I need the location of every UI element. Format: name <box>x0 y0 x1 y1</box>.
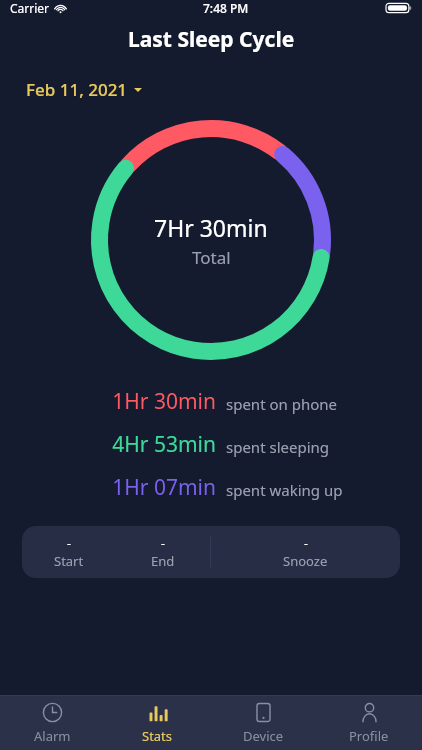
staticText: 7Hr 30min <box>154 212 268 243</box>
staticText: 7:48 PM <box>203 0 249 16</box>
staticText: Device <box>243 727 284 745</box>
button[interactable]: Device <box>210 696 316 750</box>
staticText: - <box>161 535 165 551</box>
staticText: 4Hr 53min <box>112 430 216 459</box>
staticText: - <box>304 535 308 551</box>
staticText: Start <box>54 552 84 570</box>
staticText: spent on phone <box>226 394 338 414</box>
staticText: spent waking up <box>226 480 343 500</box>
staticText: End <box>151 552 175 570</box>
staticText: Feb 11, 2021 <box>26 78 128 101</box>
button[interactable]: Profile <box>316 696 422 750</box>
button[interactable]: Stats <box>105 696 210 750</box>
button[interactable]: Feb 11, 2021 <box>24 74 144 105</box>
staticText: Last Sleep Cycle <box>128 25 295 54</box>
button[interactable]: Alarm <box>0 696 105 750</box>
staticText: 1Hr 30min <box>112 387 216 416</box>
staticText: Carrier <box>10 0 50 16</box>
staticText: Snooze <box>283 552 328 570</box>
staticText: Alarm <box>34 727 71 745</box>
staticText: Profile <box>349 727 389 745</box>
staticText: Total <box>192 246 231 269</box>
button[interactable]: - <box>22 526 400 578</box>
staticText: Stats <box>142 727 173 745</box>
staticText: spent sleeping <box>226 437 330 457</box>
staticText: 1Hr 07min <box>112 473 216 502</box>
staticText: - <box>67 535 71 551</box>
